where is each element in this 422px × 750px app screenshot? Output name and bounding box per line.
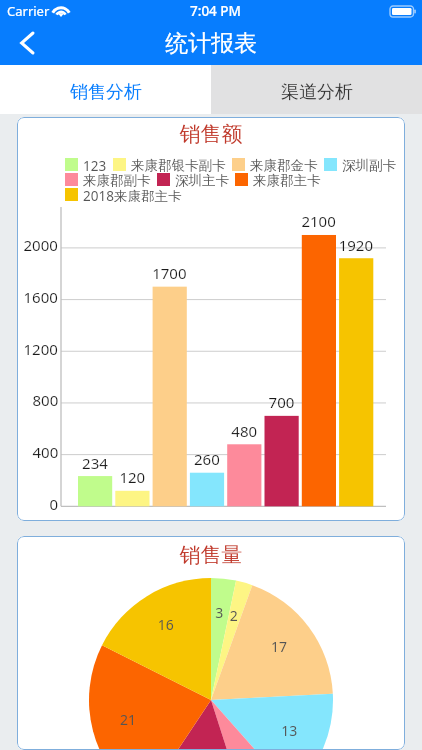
button[interactable]: Back: [0, 22, 46, 65]
staticText: 123: [83, 157, 107, 172]
staticText: 深圳主卡: [175, 172, 229, 187]
staticText: Carrier: [7, 2, 50, 20]
staticText: 销售额: [17, 121, 405, 147]
staticText: 2018来康郡主卡: [83, 187, 182, 202]
staticText: 统计报表: [165, 29, 257, 58]
staticText: 来康郡主卡: [253, 172, 321, 187]
staticText: 销售量: [17, 542, 405, 568]
staticText: 深圳副卡: [342, 157, 396, 172]
button[interactable]: 销售分析: [0, 65, 211, 114]
staticText: 销售分析: [70, 81, 142, 104]
staticText: 来康郡副卡: [83, 172, 151, 187]
staticText: 来康郡银卡副卡: [131, 157, 226, 172]
staticText: 来康郡金卡: [250, 157, 318, 172]
staticText: 7:04 PM: [190, 2, 241, 20]
staticText: 渠道分析: [281, 81, 353, 104]
button[interactable]: 渠道分析: [211, 65, 422, 114]
